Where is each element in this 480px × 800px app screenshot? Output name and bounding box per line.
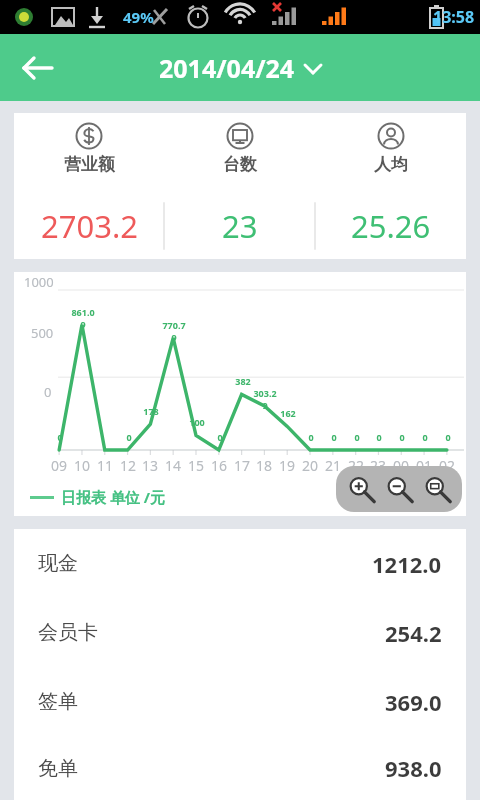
staticText: 369.0 [385, 687, 442, 717]
staticText: 770.79 [161, 319, 187, 343]
staticText: 10 [71, 456, 93, 475]
staticText: 免单 [38, 756, 78, 781]
staticText: 台数 [223, 154, 257, 175]
staticText: 0 [298, 431, 324, 443]
staticText: 营业额 [64, 154, 115, 175]
staticText: 21 [322, 456, 344, 475]
staticText: 500 [31, 324, 54, 342]
staticText: 现金 [38, 551, 78, 576]
staticText: 人均 [374, 154, 408, 175]
staticText: 23 [222, 205, 258, 247]
staticText: 303.29 [252, 387, 278, 411]
staticText: 382 [230, 375, 256, 387]
staticText: 1212.0 [372, 549, 442, 579]
staticText: 2703.2 [41, 205, 138, 247]
button[interactable]: Reset zoom [418, 470, 456, 508]
staticText: 178 [138, 405, 164, 417]
staticText: 0 [344, 431, 370, 443]
staticText: 0 [412, 431, 438, 443]
staticText: 254.2 [385, 618, 442, 648]
staticText: 12 [117, 456, 139, 475]
staticText: 162 [275, 407, 301, 419]
staticText: 00 [390, 456, 412, 475]
staticText: 0 [435, 431, 461, 443]
staticText: 0 [44, 383, 52, 401]
staticText: 17 [231, 456, 253, 475]
staticText: 0 [389, 431, 415, 443]
staticText: 100 [184, 416, 210, 428]
staticText: 861.09 [70, 306, 96, 330]
staticText: 14 [162, 456, 184, 475]
staticText: 0 [116, 431, 142, 443]
staticText: 19 [276, 456, 298, 475]
staticText: 日报表 单位 /元 [61, 487, 166, 507]
staticText: 0 [207, 431, 233, 443]
staticText: 签单 [38, 689, 78, 714]
staticText: 18 [253, 456, 275, 475]
button[interactable]: 2703.2 [14, 193, 164, 259]
button[interactable]: Back [14, 44, 62, 92]
button[interactable]: 免单 [14, 736, 466, 800]
button[interactable]: 现金 [14, 529, 466, 598]
staticText: 09 [48, 456, 70, 475]
staticText: 25.26 [351, 205, 431, 247]
staticText: 02 [436, 456, 458, 475]
staticText: 23 [367, 456, 389, 475]
staticText: 会员卡 [38, 620, 98, 645]
button[interactable]: 2014/04/24 [159, 51, 322, 85]
staticText: 13:58 [433, 6, 475, 28]
staticText: 0 [321, 431, 347, 443]
button[interactable]: 台数 [164, 113, 315, 175]
staticText: 11 [94, 456, 116, 475]
staticText: 0 [47, 431, 73, 443]
staticText: 22 [345, 456, 367, 475]
button[interactable]: 签单 [14, 667, 466, 736]
staticText: 01 [413, 456, 435, 475]
staticText: 1000 [24, 273, 54, 291]
button[interactable]: 23 [164, 193, 315, 259]
button[interactable]: 营业额 [14, 113, 164, 175]
staticText: 16 [208, 456, 230, 475]
button[interactable]: Zoom out [380, 470, 418, 508]
button[interactable]: 25.26 [315, 193, 466, 259]
staticText: 49% [123, 7, 154, 27]
button[interactable]: Zoom in [342, 470, 380, 508]
button[interactable]: 会员卡 [14, 598, 466, 667]
staticText: 0 [366, 431, 392, 443]
staticText: 938.0 [385, 753, 442, 783]
staticText: 2014/04/24 [159, 51, 295, 85]
button[interactable]: 人均 [315, 113, 466, 175]
staticText: 20 [299, 456, 321, 475]
staticText: 15 [185, 456, 207, 475]
staticText: 13 [139, 456, 161, 475]
